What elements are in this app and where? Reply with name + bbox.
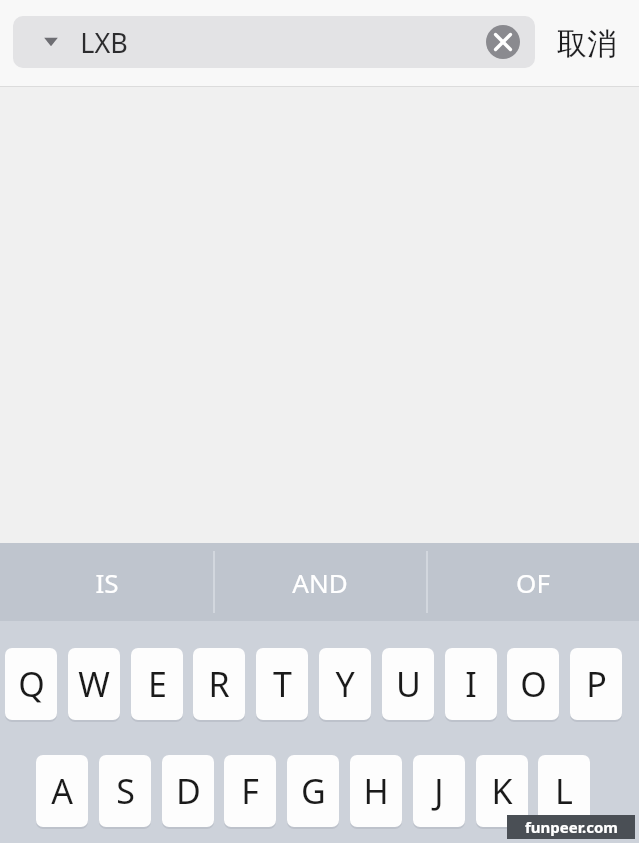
staticText: W <box>78 661 110 707</box>
button[interactable]: W <box>68 648 120 720</box>
button[interactable]: 取消 <box>543 14 631 74</box>
button[interactable]: P <box>570 648 622 720</box>
staticText: P <box>586 661 607 707</box>
staticText: T <box>273 661 292 707</box>
button[interactable]: T <box>256 648 308 720</box>
staticText: A <box>51 768 73 814</box>
staticText: G <box>301 768 326 814</box>
staticText: I <box>465 661 477 707</box>
button[interactable]: F <box>224 755 276 827</box>
button[interactable]: U <box>382 648 434 720</box>
staticText: 取消 <box>557 25 617 63</box>
staticText: Q <box>18 661 45 707</box>
staticText: F <box>241 768 259 814</box>
button[interactable]: H <box>350 755 402 827</box>
staticText: S <box>116 768 135 814</box>
staticText: E <box>148 661 167 707</box>
staticText: K <box>491 768 513 814</box>
button[interactable]: A <box>36 755 88 827</box>
button[interactable]: AND <box>213 543 426 621</box>
staticText: J <box>434 768 444 814</box>
staticText: D <box>176 768 201 814</box>
staticText: funpeer.com <box>525 817 618 837</box>
button[interactable]: D <box>162 755 214 827</box>
other: Search scope <box>40 31 62 53</box>
button[interactable]: O <box>507 648 559 720</box>
button[interactable]: S <box>99 755 151 827</box>
button[interactable]: Clear text <box>483 22 523 62</box>
button[interactable]: Q <box>5 648 57 720</box>
button[interactable]: I <box>445 648 497 720</box>
staticText: R <box>208 661 230 707</box>
button[interactable]: K <box>476 755 528 827</box>
button[interactable]: OF <box>426 543 639 621</box>
staticText: AND <box>292 565 348 600</box>
staticText: H <box>363 768 389 814</box>
staticText: Y <box>335 661 355 707</box>
button[interactable]: Search scope <box>13 16 535 68</box>
button[interactable]: L <box>538 755 590 827</box>
staticText: L <box>555 768 573 814</box>
button[interactable]: IS <box>0 543 213 621</box>
button[interactable]: J <box>413 755 465 827</box>
staticText: IS <box>95 565 119 600</box>
button[interactable]: Y <box>319 648 371 720</box>
button[interactable]: R <box>193 648 245 720</box>
staticText: OF <box>516 565 550 600</box>
button[interactable]: E <box>131 648 183 720</box>
staticText: O <box>520 661 547 707</box>
button[interactable]: G <box>287 755 339 827</box>
staticText: U <box>396 661 421 707</box>
staticText: LXB <box>80 24 128 61</box>
